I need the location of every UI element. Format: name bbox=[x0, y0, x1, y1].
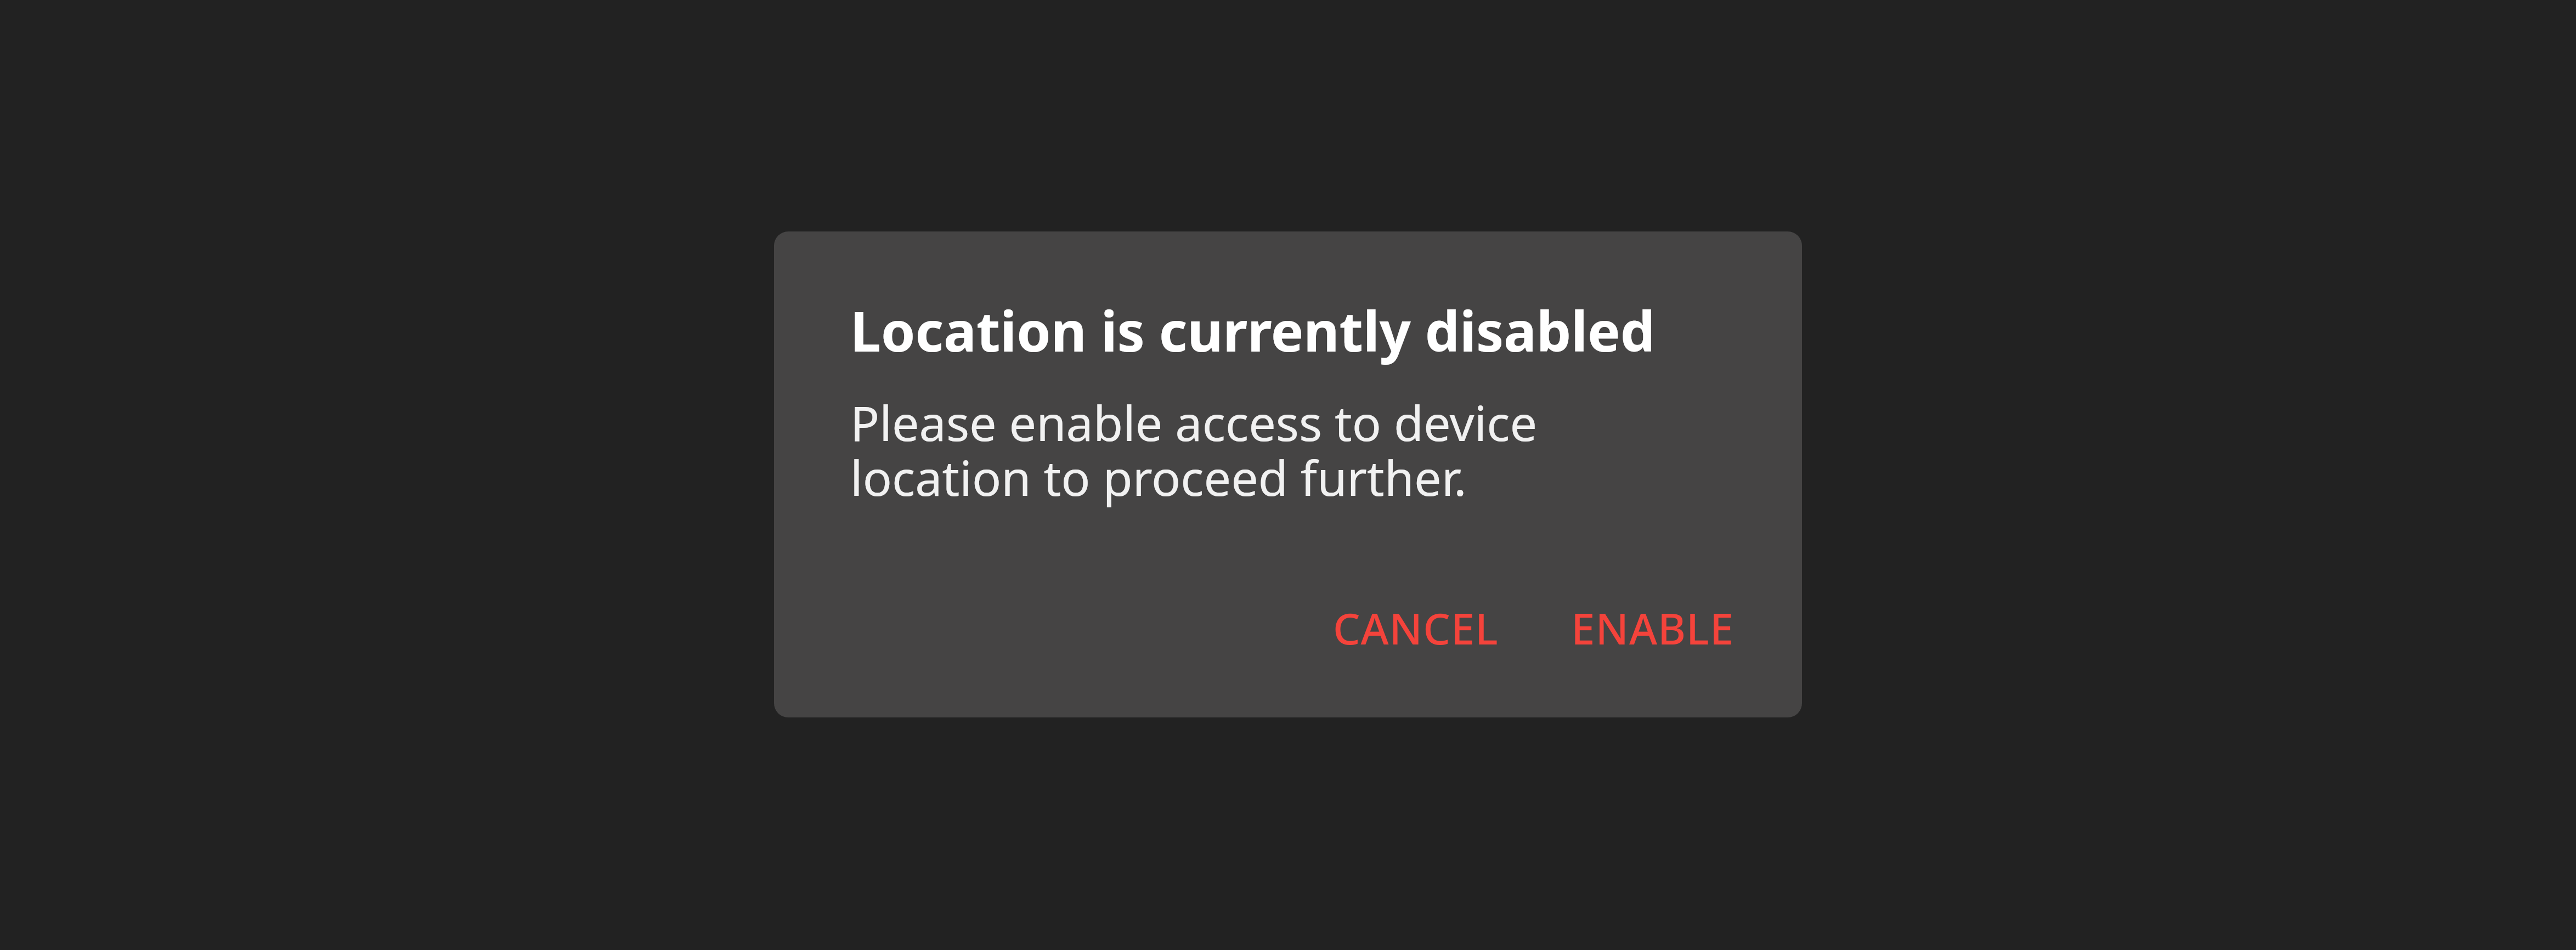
staticText: Please enable access to device location … bbox=[850, 389, 1714, 510]
button[interactable]: CANCEL bbox=[1320, 590, 1512, 666]
staticText: ENABLE bbox=[1571, 599, 1735, 657]
staticText: CANCEL bbox=[1333, 599, 1499, 657]
staticText: Location is currently disabled bbox=[850, 293, 1775, 367]
button[interactable]: ENABLE bbox=[1558, 590, 1748, 666]
